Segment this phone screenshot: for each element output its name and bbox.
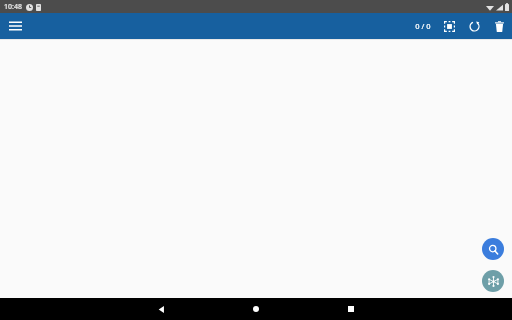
button[interactable]: Select all — [438, 15, 460, 37]
button[interactable]: Network topology — [482, 270, 504, 292]
button[interactable]: Open navigation menu — [4, 15, 26, 37]
button[interactable]: Back — [150, 298, 172, 320]
staticText: 10:48 — [4, 2, 22, 12]
button[interactable]: Home — [245, 298, 267, 320]
staticText: 0 / 0 — [415, 21, 431, 31]
button[interactable]: Delete — [488, 15, 510, 37]
button[interactable]: Refresh — [463, 15, 485, 37]
button[interactable]: 0 / 0 — [412, 18, 434, 34]
button[interactable]: Search — [482, 238, 504, 260]
button[interactable]: Recent apps — [340, 298, 362, 320]
